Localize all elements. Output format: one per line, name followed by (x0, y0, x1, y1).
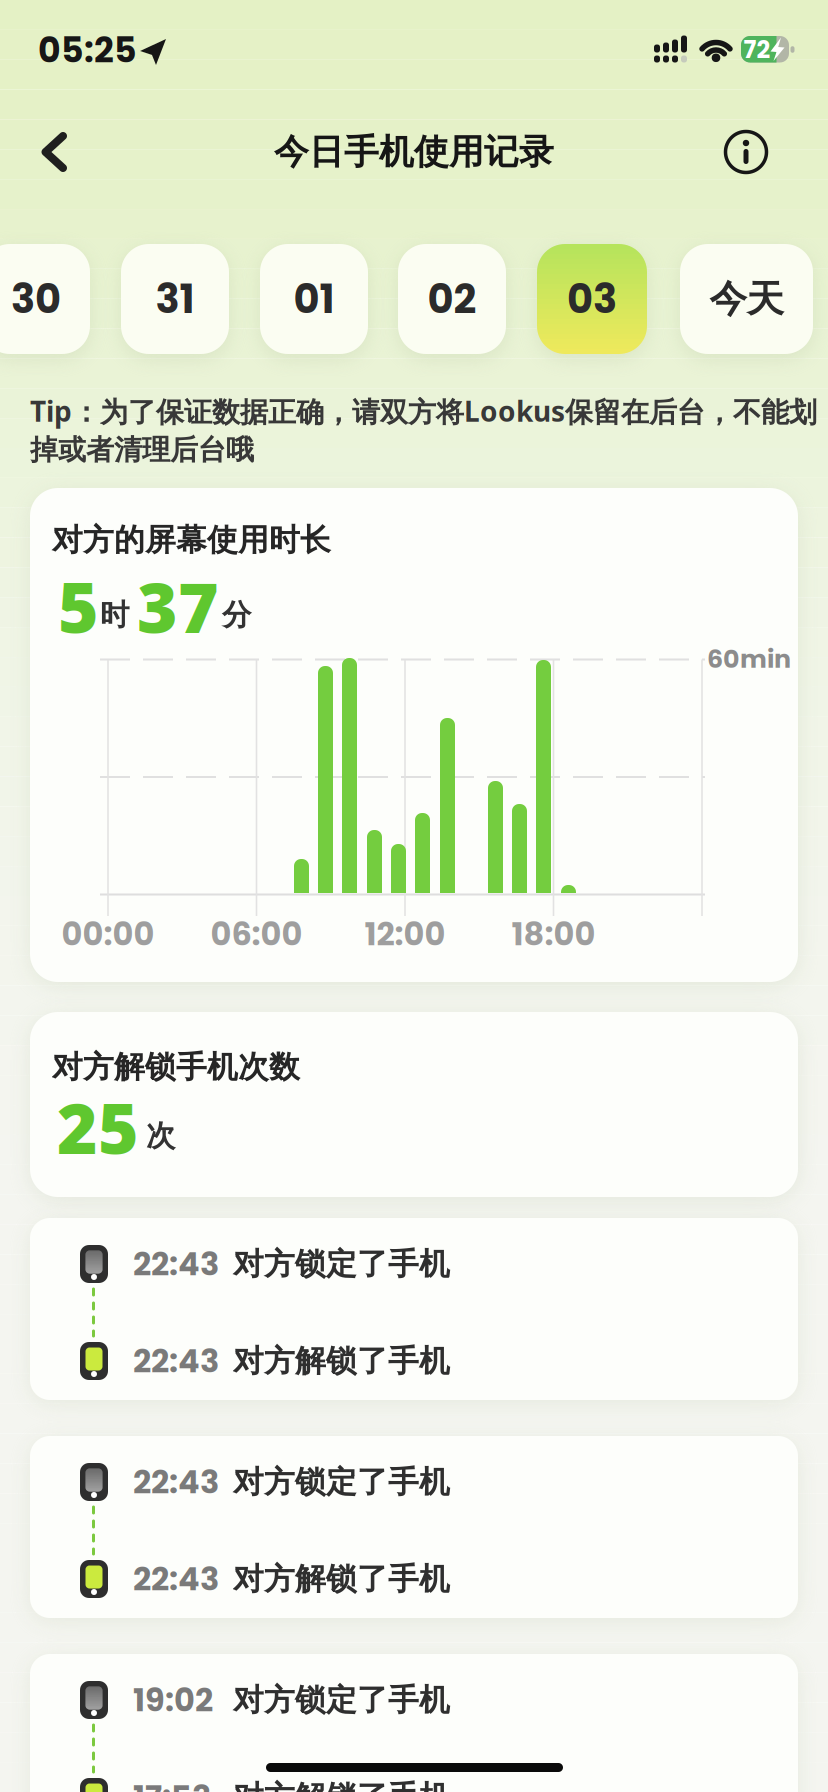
staticText: 37 (137, 560, 219, 652)
staticText: 对方的屏幕使用时长 (52, 521, 331, 559)
button[interactable]: Back (32, 122, 88, 182)
button[interactable]: 01 (260, 244, 368, 354)
staticText: 对方解锁了手机 (233, 1778, 450, 1792)
staticText: 次 (146, 1118, 175, 1154)
staticText: 06:00 (210, 912, 302, 956)
button[interactable]: 03 (537, 244, 647, 354)
button[interactable]: 02 (398, 244, 506, 354)
staticText: 22:43 (133, 1460, 219, 1504)
staticText: 今日手机使用记录 (274, 131, 554, 173)
staticText: 19:02 (133, 1678, 213, 1722)
staticText: 对方锁定了手机 (233, 1245, 450, 1283)
staticText: 5 (58, 560, 99, 652)
staticText: 60min (707, 641, 791, 677)
staticText: 05:25 (38, 26, 137, 74)
staticText: 03 (567, 271, 617, 327)
staticText: 02 (427, 271, 476, 327)
staticText: 22:43 (133, 1339, 219, 1383)
button[interactable]: 今天 (680, 244, 813, 354)
staticText: 25 (57, 1081, 139, 1173)
staticText: 对方锁定了手机 (233, 1681, 450, 1719)
staticText: 分 (222, 597, 251, 633)
button[interactable]: 30 (0, 244, 90, 354)
button[interactable]: 31 (121, 244, 229, 354)
staticText: 对方锁定了手机 (233, 1463, 450, 1501)
staticText: 今天 (709, 276, 783, 322)
staticText: 对方解锁了手机 (233, 1342, 450, 1380)
staticText: 01 (293, 271, 334, 327)
staticText: 00:00 (61, 912, 154, 956)
staticText: Tip：为了保证数据正确，请双方将Lookus保留在后台，不能划 (30, 392, 817, 430)
staticText: 掉或者清理后台哦 (30, 433, 254, 467)
staticText: 22:43 (133, 1557, 219, 1601)
staticText: 30 (11, 271, 61, 327)
staticText: 31 (155, 271, 194, 327)
staticText: 72 (743, 33, 770, 66)
staticText: 对方解锁手机次数 (52, 1048, 300, 1086)
staticText: 12:00 (364, 912, 445, 956)
staticText: 时 (100, 597, 129, 633)
button[interactable]: Info (718, 124, 774, 180)
staticText: 18:00 (511, 912, 595, 956)
staticText: 17:53 (133, 1775, 211, 1792)
staticText: 22:43 (133, 1242, 219, 1286)
staticText: 对方解锁了手机 (233, 1560, 450, 1598)
